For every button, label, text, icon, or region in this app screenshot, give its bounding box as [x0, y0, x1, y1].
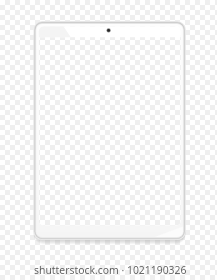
button[interactable]: Front camera	[104, 25, 114, 35]
button[interactable]: shutterstock.com · 1021190326	[34, 263, 187, 277]
button[interactable]: Tablet screen	[39, 27, 181, 226]
